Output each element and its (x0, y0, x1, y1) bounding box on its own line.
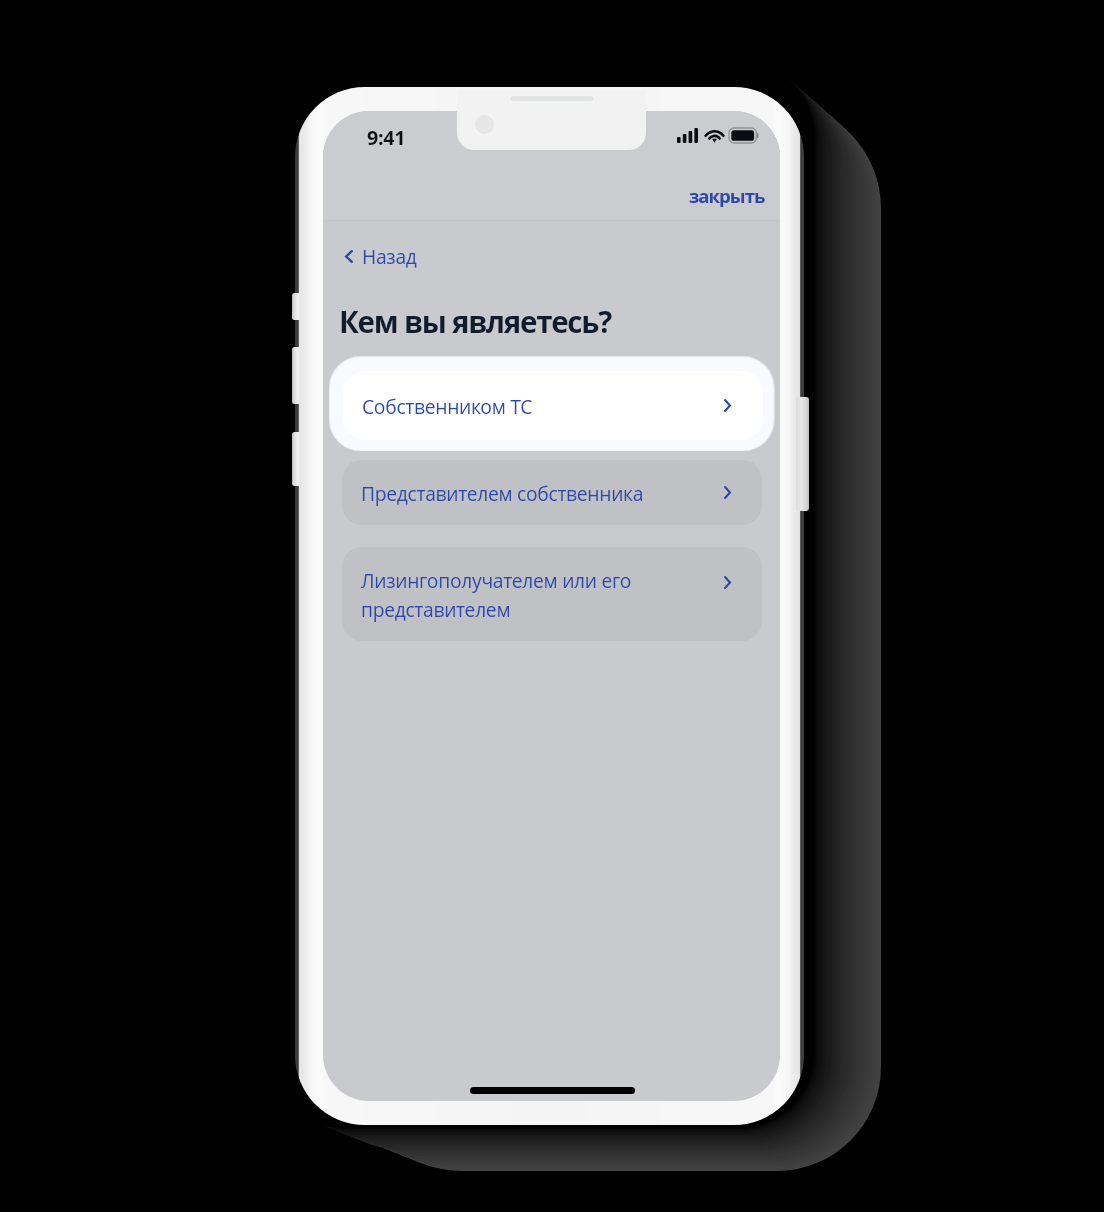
button[interactable]: закрыть (683, 175, 771, 216)
button[interactable]: Собственником ТС (343, 371, 763, 440)
staticText: Представителем собственника (361, 480, 644, 506)
staticText: закрыть (689, 183, 765, 208)
staticText: Собственником ТС (362, 393, 533, 419)
staticText: Лизингополучателем или его представителе… (361, 567, 632, 622)
button[interactable]: Лизингополучателем или его представителе… (342, 547, 762, 641)
staticText: 9:41 (367, 124, 406, 151)
staticText: Кем вы являетесь? (339, 301, 612, 341)
staticText: Назад (362, 243, 417, 269)
button[interactable]: Назад (339, 236, 423, 276)
button[interactable]: Представителем собственника (342, 460, 762, 525)
other: Cellular signal (677, 128, 698, 143)
other: Wi-Fi (705, 128, 724, 142)
other: Battery (729, 128, 760, 143)
